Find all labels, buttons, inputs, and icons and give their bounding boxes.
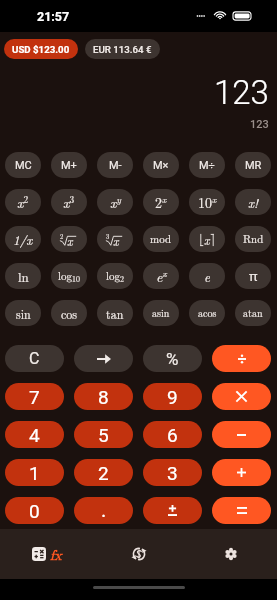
- button[interactable]: Plus: [212, 459, 271, 486]
- staticText: USD $123.00: [12, 44, 70, 55]
- button[interactable]: 1: [5, 459, 64, 486]
- button[interactable]: ln: [5, 263, 41, 289]
- staticText: ex: [156, 266, 167, 286]
- button[interactable]: acos: [189, 300, 225, 326]
- staticText: 2: [98, 462, 109, 484]
- staticText: log2: [106, 268, 125, 285]
- staticText: 123: [250, 118, 269, 131]
- staticText: xy: [110, 192, 121, 212]
- button[interactable]: x!: [235, 189, 271, 215]
- button[interactable]: Currency converter: [93, 529, 185, 579]
- staticText: 7: [29, 386, 40, 408]
- button[interactable]: π: [235, 263, 271, 289]
- staticText: x: [67, 232, 73, 249]
- button[interactable]: 5: [74, 421, 133, 448]
- button[interactable]: 2: [51, 226, 87, 252]
- staticText: 0: [29, 500, 40, 522]
- button[interactable]: 2: [74, 459, 133, 486]
- button[interactable]: 1/x: [5, 226, 41, 252]
- button[interactable]: M×: [143, 152, 179, 178]
- button[interactable]: tan: [97, 300, 133, 326]
- staticText: 123: [214, 73, 269, 112]
- staticText: M+: [61, 159, 77, 172]
- button[interactable]: 7: [5, 383, 64, 410]
- staticText: atan: [243, 306, 263, 320]
- staticText: EUR 113.64 €: [93, 44, 152, 55]
- button[interactable]: 9: [143, 383, 202, 410]
- staticText: asin: [152, 306, 170, 320]
- staticText: mod: [150, 231, 172, 247]
- staticText: 2: [60, 232, 64, 241]
- button[interactable]: 3: [143, 459, 202, 486]
- button[interactable]: Rnd: [235, 226, 271, 252]
- button[interactable]: 8: [74, 383, 133, 410]
- staticText: 6: [167, 424, 178, 446]
- button[interactable]: log10: [51, 263, 87, 289]
- staticText: x2: [17, 192, 29, 212]
- staticText: M-: [109, 159, 122, 172]
- button[interactable]: Divide: [212, 345, 271, 372]
- button[interactable]: USD $123.00: [4, 39, 78, 59]
- button[interactable]: e: [189, 263, 225, 289]
- staticText: Rnd: [243, 231, 264, 247]
- staticText: x!: [248, 193, 259, 211]
- staticText: MR: [245, 159, 262, 172]
- staticText: 4: [29, 424, 40, 446]
- staticText: acos: [198, 306, 217, 320]
- button[interactable]: x3: [51, 189, 87, 215]
- button[interactable]: 6: [143, 421, 202, 448]
- button[interactable]: .: [74, 497, 133, 524]
- staticText: M×: [153, 159, 169, 172]
- button[interactable]: x: [189, 226, 225, 252]
- staticText: log10: [58, 268, 80, 285]
- button[interactable]: Minus: [212, 421, 271, 448]
- button[interactable]: Backspace: [74, 345, 133, 372]
- button[interactable]: sin: [5, 300, 41, 326]
- button[interactable]: atan: [235, 300, 271, 326]
- button[interactable]: M÷: [189, 152, 225, 178]
- staticText: 21:57: [37, 9, 70, 24]
- staticText: 1/x: [13, 230, 33, 248]
- button[interactable]: x2: [5, 189, 41, 215]
- staticText: 1: [29, 462, 40, 484]
- staticText: x: [113, 232, 119, 249]
- staticText: e: [204, 267, 210, 285]
- button[interactable]: asin: [143, 300, 179, 326]
- button[interactable]: 4: [5, 421, 64, 448]
- button[interactable]: M+: [51, 152, 87, 178]
- button[interactable]: %: [143, 345, 202, 372]
- staticText: 3: [106, 232, 110, 241]
- staticText: cos: [61, 305, 78, 322]
- button[interactable]: Settings: [185, 529, 277, 579]
- staticText: sin: [16, 305, 31, 322]
- staticText: 5: [98, 424, 109, 446]
- staticText: 8: [98, 386, 109, 408]
- button[interactable]: M-: [97, 152, 133, 178]
- staticText: tan: [106, 305, 124, 322]
- button[interactable]: log2: [97, 263, 133, 289]
- button[interactable]: 2x: [143, 189, 179, 215]
- button[interactable]: MR: [235, 152, 271, 178]
- staticText: 2x: [155, 192, 167, 212]
- button[interactable]: C: [5, 345, 64, 372]
- button[interactable]: 0: [5, 497, 64, 524]
- staticText: .: [101, 498, 107, 521]
- button[interactable]: Plus minus: [143, 497, 202, 524]
- staticText: x3: [63, 192, 75, 212]
- staticText: x: [204, 231, 210, 248]
- button[interactable]: Equals: [212, 497, 271, 524]
- button[interactable]: ex: [143, 263, 179, 289]
- button[interactable]: EUR 113.64 €: [85, 39, 160, 59]
- button[interactable]: MC: [5, 152, 41, 178]
- button[interactable]: mod: [143, 226, 179, 252]
- button[interactable]: Calculator: [0, 529, 93, 579]
- button[interactable]: 3: [97, 226, 133, 252]
- button[interactable]: cos: [51, 300, 87, 326]
- button[interactable]: 10x: [189, 189, 225, 215]
- staticText: %: [166, 349, 179, 369]
- button[interactable]: xy: [97, 189, 133, 215]
- button[interactable]: Multiply: [212, 383, 271, 410]
- staticText: 9: [167, 386, 178, 408]
- staticText: MC: [15, 159, 32, 172]
- staticText: C: [29, 349, 40, 368]
